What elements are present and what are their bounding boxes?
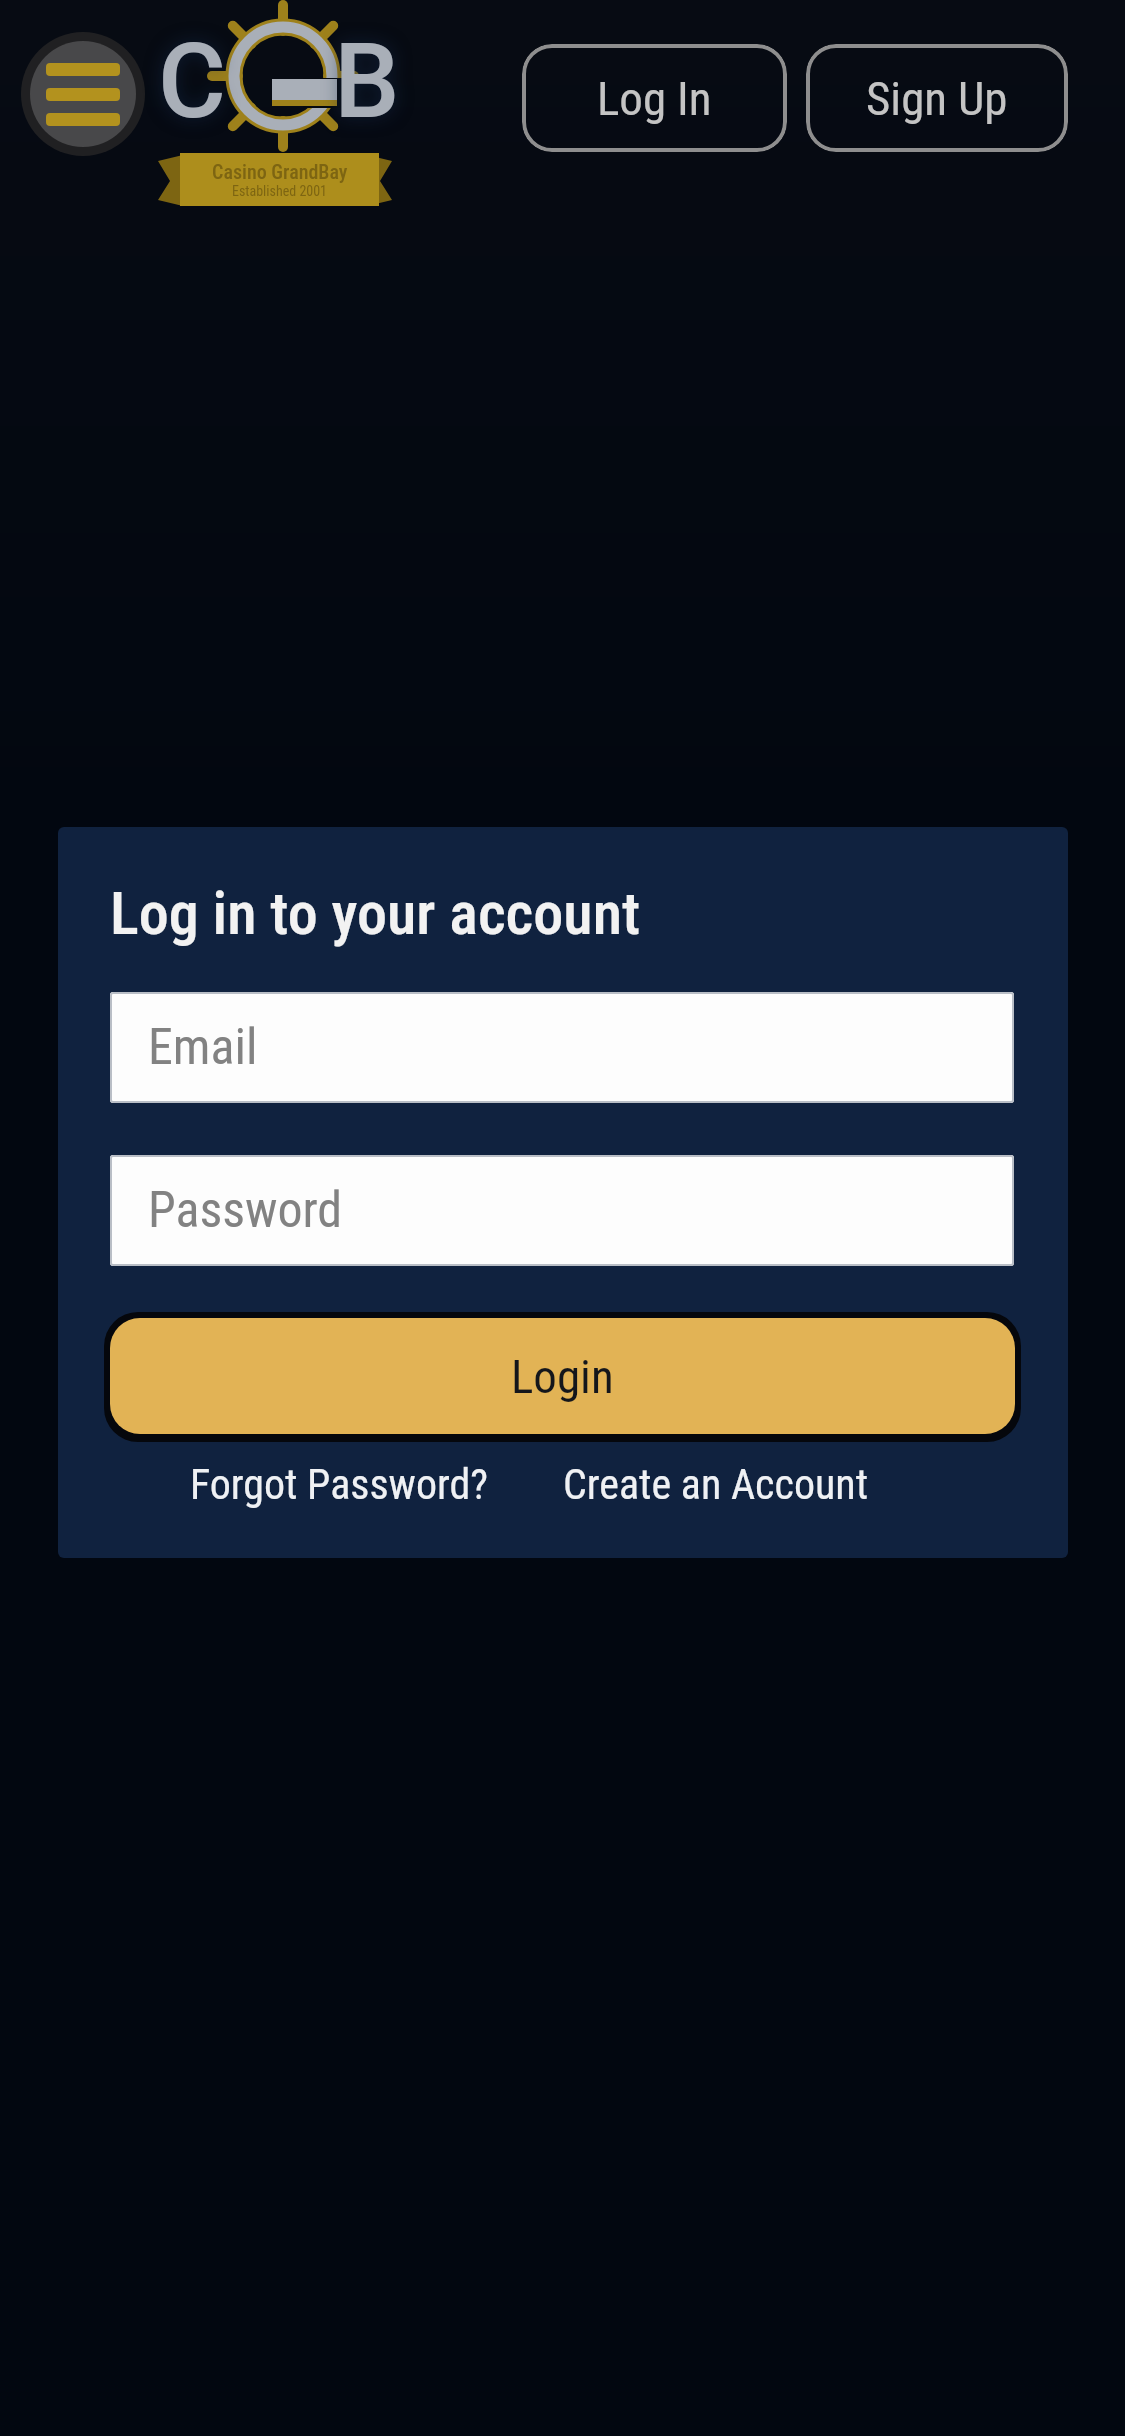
button[interactable]: Forgot Password? [190,1460,488,1509]
staticText: Password [148,1181,343,1240]
button[interactable] [21,32,145,156]
button[interactable]: Email [110,992,1014,1103]
button[interactable]: Sign Up [806,44,1068,152]
button[interactable]: Login [110,1318,1015,1434]
staticText: Log in to your account [110,878,641,948]
staticText: Casino GrandBay [212,160,348,183]
button[interactable]: Create an Account [563,1460,869,1509]
staticText: C [158,21,226,143]
staticText: Email [148,1018,258,1077]
staticText: Sign Up [866,71,1008,126]
button[interactable]: Log In [522,44,787,152]
staticText: B [334,21,400,143]
staticText: Log In [597,71,712,126]
staticText: Login [511,1349,614,1404]
staticText: Established 2001 [232,183,328,199]
button[interactable]: Password [110,1155,1014,1266]
